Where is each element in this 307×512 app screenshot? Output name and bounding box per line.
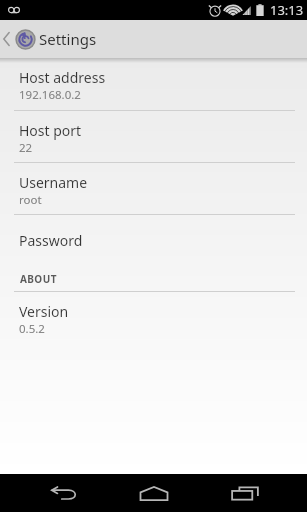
staticText: root bbox=[19, 192, 42, 208]
staticText: Host address bbox=[19, 68, 106, 87]
button[interactable]: Recent apps bbox=[209, 474, 280, 512]
staticText: 0.5.2 bbox=[19, 321, 45, 337]
button[interactable]: Up bbox=[0, 20, 307, 58]
staticText: Settings bbox=[39, 29, 97, 49]
button[interactable]: Version bbox=[0, 292, 307, 344]
button[interactable]: Username bbox=[0, 163, 307, 214]
staticText: 192.168.0.2 bbox=[19, 87, 81, 103]
staticText: Username bbox=[19, 173, 88, 192]
staticText: Host port bbox=[19, 121, 82, 140]
other: Up bbox=[1, 26, 12, 52]
button[interactable]: Back bbox=[28, 474, 99, 512]
staticText: Password bbox=[19, 231, 83, 250]
button[interactable]: Host address bbox=[0, 58, 307, 110]
staticText: Version bbox=[19, 302, 69, 321]
staticText: 22 bbox=[19, 140, 33, 156]
button[interactable]: Password bbox=[0, 215, 307, 265]
staticText: 13:13 bbox=[270, 1, 304, 19]
button[interactable]: Host port bbox=[0, 111, 307, 162]
button[interactable]: Home bbox=[118, 474, 189, 512]
staticText: ABOUT bbox=[20, 272, 57, 286]
